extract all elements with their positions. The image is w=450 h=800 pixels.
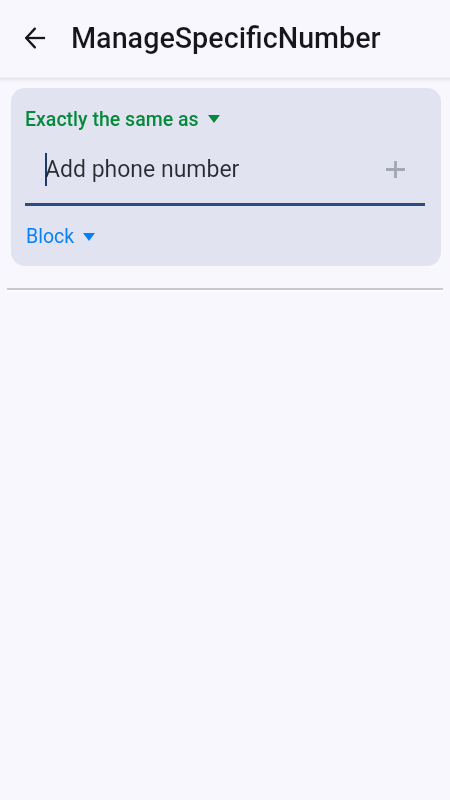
button[interactable]: Back: [13, 16, 57, 60]
staticText: Exactly the same as: [25, 108, 199, 131]
button[interactable]: Block: [24, 222, 114, 252]
button[interactable]: Exactly the same as: [23, 105, 235, 135]
button[interactable]: Add: [375, 149, 415, 189]
staticText: Add phone number: [45, 156, 240, 183]
button[interactable]: Add phone number: [25, 145, 365, 203]
staticText: ManageSpecificNumber: [71, 21, 381, 55]
staticText: Block: [26, 225, 75, 248]
